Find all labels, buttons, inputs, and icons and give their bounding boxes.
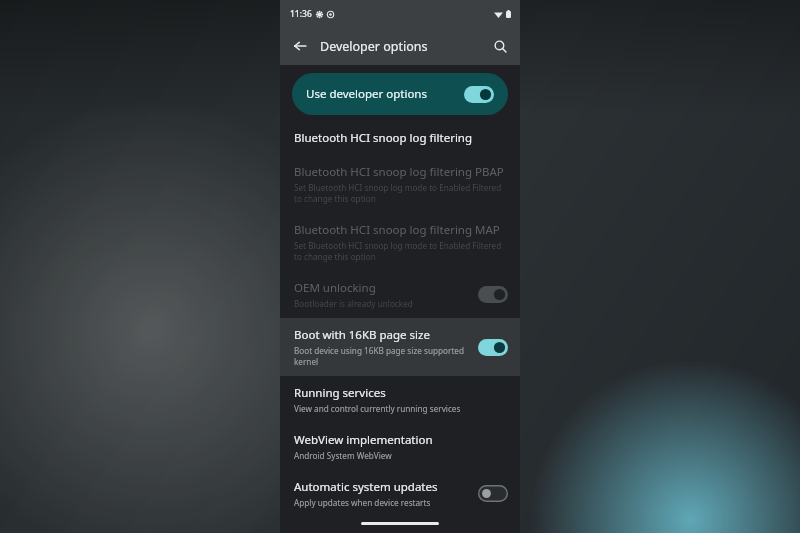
button[interactable]: Search [486, 32, 514, 60]
button[interactable]: OEM unlocking [280, 271, 520, 318]
button[interactable]: Bluetooth HCI snoop log filtering [280, 121, 520, 155]
staticText: Use developer options [306, 86, 427, 102]
button[interactable]: Bluetooth HCI snoop log filtering PBAP [280, 155, 520, 213]
staticText: View and control currently running servi… [294, 403, 461, 414]
button[interactable]: Running services [280, 376, 520, 423]
staticText: Developer options [320, 38, 428, 55]
staticText: Apply updates when device restarts [294, 497, 431, 508]
staticText: WebView implementation [294, 432, 433, 448]
button[interactable]: Bluetooth HCI snoop log filtering MAP [280, 213, 520, 271]
button[interactable]: Automatic system updates [280, 470, 520, 517]
staticText: Set Bluetooth HCI snoop log mode to Enab… [294, 182, 506, 204]
staticText: OEM unlocking [294, 280, 376, 296]
button[interactable]: Toggle on [464, 86, 494, 103]
button[interactable]: Toggle on [478, 339, 508, 356]
staticText: Bluetooth HCI snoop log filtering MAP [294, 222, 500, 238]
button[interactable]: Back [286, 32, 314, 60]
staticText: Automatic system updates [294, 479, 438, 495]
staticText: Boot with 16KB page size [294, 327, 430, 343]
button[interactable]: DSU Loader [280, 517, 520, 533]
button[interactable]: Toggle off [478, 485, 508, 502]
staticText: Running services [294, 385, 386, 401]
button[interactable]: WebView implementation [280, 423, 520, 470]
staticText: Bluetooth HCI snoop log filtering PBAP [294, 164, 504, 180]
button[interactable]: Use developer options [292, 73, 508, 115]
button[interactable]: Toggle on [478, 286, 508, 303]
button[interactable]: Boot with 16KB page size [280, 318, 520, 376]
staticText: Bootloader is already unlocked [294, 298, 413, 309]
staticText: Bluetooth HCI snoop log filtering [294, 130, 473, 146]
staticText: Set Bluetooth HCI snoop log mode to Enab… [294, 240, 506, 262]
staticText: Boot device using 16KB page size support… [294, 345, 470, 367]
staticText: 11:36 [290, 8, 312, 20]
staticText: Android System WebView [294, 450, 392, 461]
